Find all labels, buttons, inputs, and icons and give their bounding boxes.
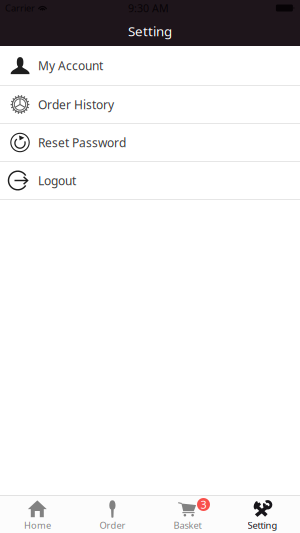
staticText: 9:30 AM <box>128 1 169 15</box>
button[interactable]: Home <box>0 496 75 533</box>
button[interactable]: Reset Password <box>0 124 300 161</box>
staticText: Carrier <box>5 2 35 14</box>
staticText: Order History <box>38 96 114 112</box>
staticText: Order <box>99 519 125 531</box>
button[interactable]: Order <box>75 496 150 533</box>
staticText: Reset Password <box>38 134 126 150</box>
staticText: Setting <box>128 22 172 40</box>
staticText: Logout <box>38 172 76 188</box>
staticText: 3 <box>200 497 206 512</box>
button[interactable]: My Account <box>0 46 300 85</box>
staticText: Home <box>24 519 51 531</box>
button[interactable]: Order History <box>0 86 300 123</box>
staticText: Basket <box>173 519 201 531</box>
button[interactable]: Logout <box>0 162 300 199</box>
staticText: Setting <box>247 519 277 531</box>
button[interactable]: Basket <box>150 496 225 533</box>
button[interactable]: Setting <box>225 496 300 533</box>
staticText: My Account <box>38 57 103 73</box>
